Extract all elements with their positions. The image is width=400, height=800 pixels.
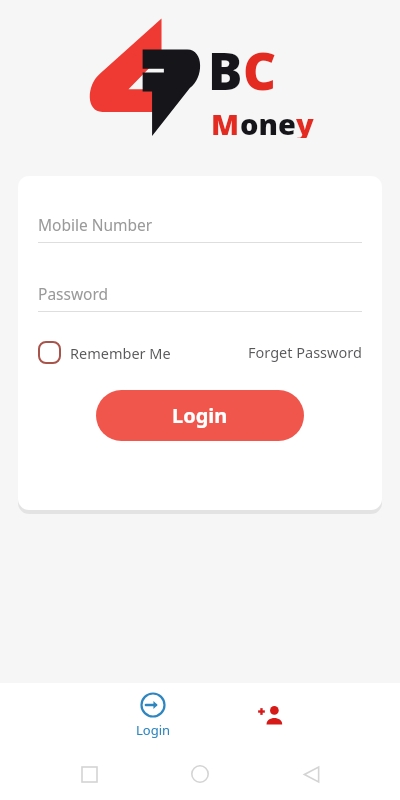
button[interactable]: Login xyxy=(105,686,201,745)
staticText: Forget Password xyxy=(248,342,362,362)
button[interactable]: Remember Me xyxy=(38,337,171,368)
staticText: M xyxy=(211,104,240,138)
staticText: Mobile Number xyxy=(38,214,153,235)
button[interactable]: Home xyxy=(178,752,222,796)
staticText: Password xyxy=(38,283,109,304)
staticText: Login xyxy=(136,721,171,739)
button[interactable]: Mobile Number xyxy=(38,214,362,243)
staticText: Remember Me xyxy=(70,343,171,363)
staticText: one xyxy=(240,104,296,138)
button[interactable]: Register xyxy=(223,691,319,741)
staticText: y xyxy=(296,104,314,138)
staticText: Login xyxy=(172,402,228,429)
button[interactable]: Back xyxy=(289,752,333,796)
button[interactable]: Recent apps xyxy=(67,752,111,796)
button[interactable]: Forget Password xyxy=(248,336,362,368)
button[interactable]: Password xyxy=(38,283,362,312)
staticText: C xyxy=(243,35,277,104)
button[interactable]: Login xyxy=(96,390,304,441)
staticText: B xyxy=(208,35,243,104)
